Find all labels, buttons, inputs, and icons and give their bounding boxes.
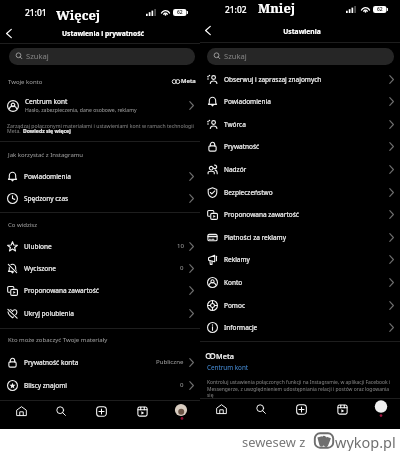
button[interactable]: Nadzór: [200, 158, 400, 181]
staticText: Obserwuj i zapraszaj znajomych: [224, 75, 322, 84]
staticText: Meta: [181, 77, 196, 85]
staticText: Wyciszone: [24, 264, 56, 273]
button[interactable]: Informacje: [200, 316, 400, 339]
staticText: Meta.: [7, 127, 23, 134]
staticText: Powiadomienia: [24, 172, 71, 181]
staticText: Nadzór: [224, 165, 247, 174]
staticText: Kontroluj ustawienia połączonych funkcji…: [207, 379, 391, 386]
staticText: Messengerze, z uwzględnieniem udostępnia…: [207, 386, 390, 393]
button[interactable]: Reels: [128, 400, 156, 422]
staticText: Twoje konto: [8, 78, 43, 86]
staticText: Więcej: [56, 6, 101, 24]
button[interactable]: Centrum kont: [0, 94, 200, 117]
staticText: Bezpieczeństwo: [224, 188, 273, 197]
button[interactable]: Pomoc: [200, 294, 400, 317]
button[interactable]: Back: [2, 26, 16, 40]
staticText: Ukryj polubienia: [24, 309, 74, 318]
button[interactable]: Szukaj: [207, 48, 394, 65]
button[interactable]: Back: [201, 23, 215, 37]
button[interactable]: Powiadomienia: [200, 90, 400, 113]
staticText: Reklamy: [224, 255, 250, 264]
button[interactable]: Konto: [200, 271, 400, 294]
button[interactable]: Bliscy znajomi: [0, 374, 200, 397]
staticText: Proponowana zawartość: [224, 210, 299, 219]
button[interactable]: Proponowana zawartość: [0, 279, 200, 302]
button[interactable]: Profile: [167, 400, 195, 422]
staticText: Co widzisz: [8, 221, 37, 229]
button[interactable]: Proponowana zawartość: [200, 203, 400, 226]
staticText: się: [207, 392, 214, 399]
staticText: Jak korzystać z Instagramu: [8, 151, 84, 159]
button[interactable]: Home: [207, 398, 235, 420]
staticText: Bliscy znajomi: [24, 381, 67, 390]
staticText: Centrum kont: [207, 363, 249, 372]
staticText: Kto może zobaczyć Twoje materiały: [8, 336, 108, 344]
staticText: 0: [180, 263, 184, 271]
staticText: Pomoc: [224, 301, 245, 310]
button[interactable]: Centrum kont: [207, 363, 249, 372]
button[interactable]: Twórca: [200, 113, 400, 136]
staticText: Informacje: [224, 323, 258, 332]
staticText: Ulubione: [24, 242, 52, 251]
staticText: Twórca: [224, 120, 246, 129]
button[interactable]: Create: [287, 398, 315, 420]
button[interactable]: Ulubione: [0, 235, 200, 258]
staticText: Konto: [224, 278, 243, 287]
staticText: Szukaj: [224, 51, 247, 61]
button[interactable]: Szukaj: [9, 48, 195, 65]
button[interactable]: Bezpieczeństwo: [200, 181, 400, 204]
button[interactable]: Prywatność: [200, 135, 400, 158]
staticText: 62: [377, 6, 383, 13]
staticText: 21:02: [225, 4, 247, 15]
button[interactable]: Create: [87, 400, 115, 422]
button[interactable]: Powiadomienia: [0, 165, 200, 188]
button[interactable]: Search: [247, 398, 275, 420]
staticText: Szukaj: [26, 51, 49, 61]
staticText: wykop.pl: [335, 432, 396, 451]
button[interactable]: Profile: [367, 398, 395, 420]
button[interactable]: Reklamy: [200, 248, 400, 271]
staticText: 21:01: [25, 7, 47, 18]
staticText: Hasło, zabezpieczenia, dane osobowe, rek…: [25, 107, 137, 114]
staticText: sewesew z: [242, 433, 306, 451]
staticText: Meta: [216, 351, 234, 361]
button[interactable]: Home: [7, 400, 35, 422]
staticText: Publiczne: [156, 357, 184, 365]
staticText: 0: [180, 380, 184, 388]
staticText: Proponowana zawartość: [24, 286, 99, 295]
button[interactable]: Reels: [328, 398, 356, 420]
staticText: Ustawienia i prywatność: [3, 29, 203, 38]
button[interactable]: Obserwuj i zapraszaj znajomych: [200, 68, 400, 91]
button[interactable]: Prywatność konta: [0, 351, 200, 374]
staticText: Zarządzaj połączonymi materiałami i usta…: [7, 122, 194, 129]
button[interactable]: Wyciszone: [0, 257, 200, 280]
staticText: Prywatność konta: [24, 358, 79, 367]
staticText: Mniej: [258, 0, 296, 17]
button[interactable]: Ukryj polubienia: [0, 302, 200, 325]
staticText: Prywatność: [224, 142, 260, 151]
staticText: Ustawienia: [202, 27, 400, 36]
button[interactable]: Search: [47, 400, 75, 422]
staticText: Powiadomienia: [224, 97, 271, 106]
button[interactable]: Spędzony czas: [0, 187, 200, 210]
staticText: 62: [177, 9, 183, 16]
staticText: Spędzony czas: [24, 194, 69, 203]
button[interactable]: Płatności za reklamy: [200, 226, 400, 249]
staticText: 10: [177, 241, 184, 249]
staticText: Dowiedz się więcej: [23, 127, 71, 134]
staticText: Płatności za reklamy: [224, 233, 286, 242]
staticText: Centrum kont: [25, 97, 68, 106]
